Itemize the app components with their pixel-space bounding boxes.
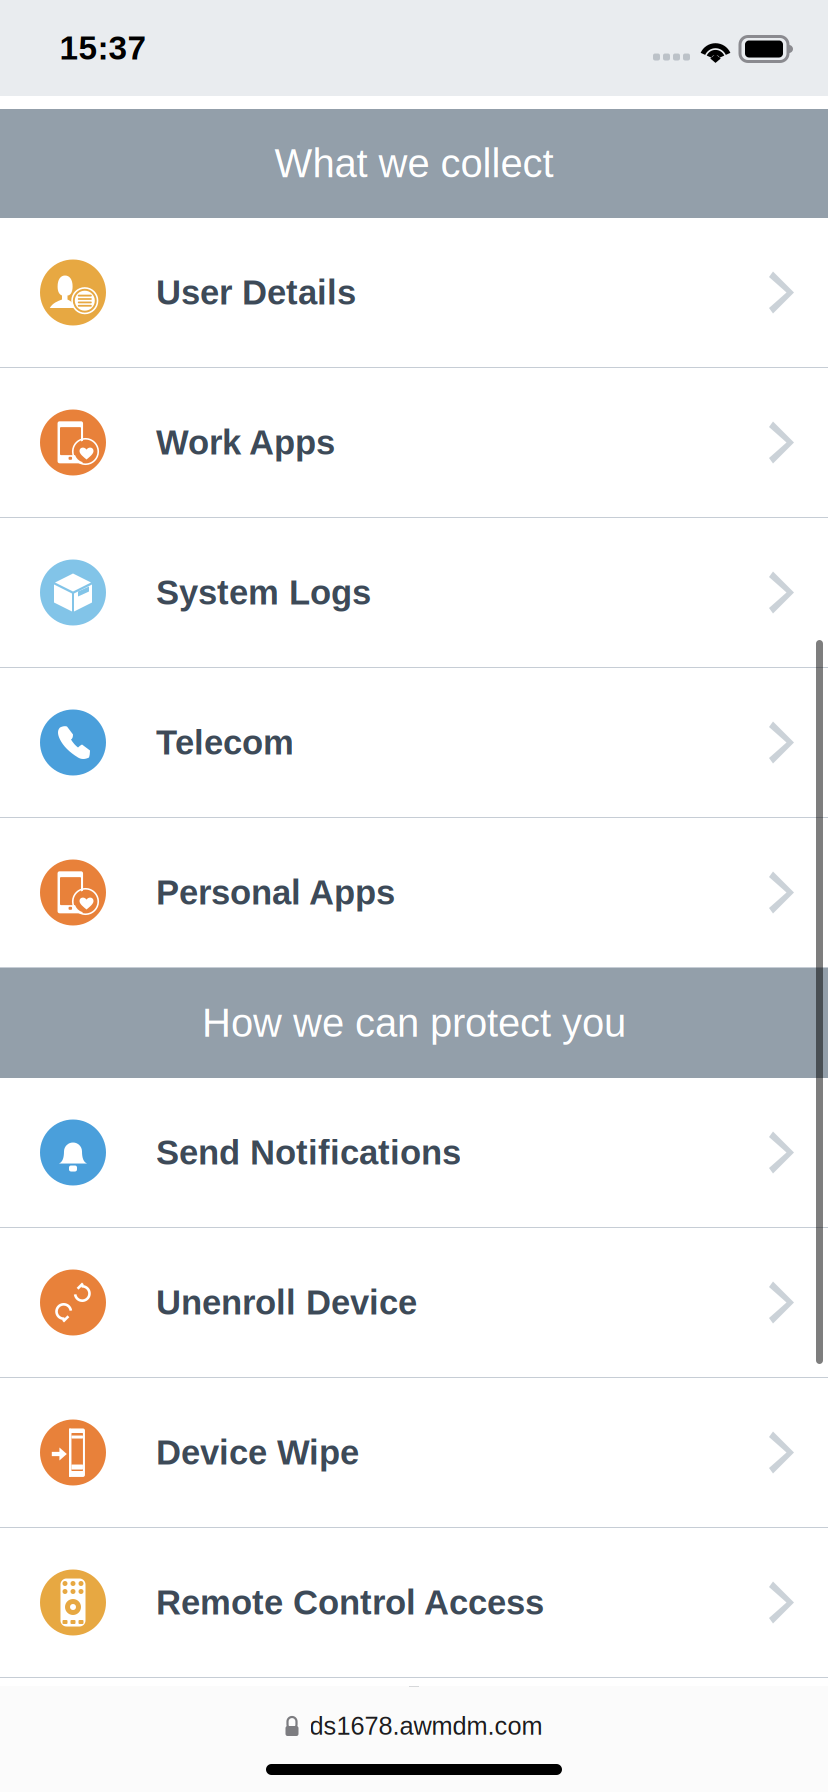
button[interactable]: Personal Apps bbox=[0, 818, 828, 968]
staticText: Personal Apps bbox=[156, 873, 395, 912]
button[interactable]: User Details bbox=[0, 218, 828, 368]
button[interactable]: ds1678.awmdm.com bbox=[255, 1695, 572, 1757]
button[interactable]: Send Notifications bbox=[0, 1078, 828, 1228]
button[interactable]: Unenroll Device bbox=[0, 1228, 828, 1378]
button[interactable]: Device Wipe bbox=[0, 1378, 828, 1528]
button[interactable]: Work Apps bbox=[0, 368, 828, 518]
staticText: ds1678.awmdm.com bbox=[309, 1712, 542, 1740]
staticText: Telecom bbox=[156, 723, 294, 762]
staticText: Device Wipe bbox=[156, 1433, 359, 1472]
staticText: Send Notifications bbox=[156, 1133, 461, 1172]
staticText: System Logs bbox=[156, 573, 371, 612]
button[interactable]: Remote Control Access bbox=[0, 1528, 828, 1678]
staticText: What we collect bbox=[274, 141, 553, 186]
staticText: 15:37 bbox=[59, 29, 146, 67]
staticText: How we can protect you bbox=[202, 1001, 626, 1045]
staticText: Work Apps bbox=[156, 423, 335, 462]
staticText: User Details bbox=[156, 273, 356, 312]
staticText: Unenroll Device bbox=[156, 1283, 417, 1322]
button[interactable]: System Logs bbox=[0, 518, 828, 668]
staticText: Remote Control Access bbox=[156, 1583, 544, 1622]
button[interactable]: Telecom bbox=[0, 668, 828, 818]
